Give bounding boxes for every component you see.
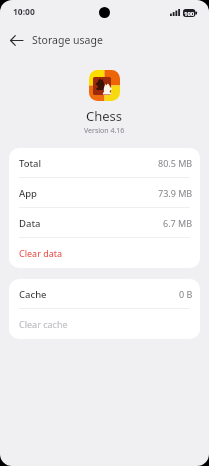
staticText: Clear cache bbox=[19, 318, 68, 330]
button[interactable]: App bbox=[9, 178, 200, 208]
staticText: 0 B bbox=[179, 288, 193, 300]
staticText: 73.9 MB bbox=[158, 187, 193, 199]
button[interactable]: Clear data bbox=[9, 238, 200, 268]
button[interactable]: Back bbox=[7, 31, 25, 49]
staticText: Clear data bbox=[19, 247, 63, 259]
staticText: 10:00 bbox=[13, 6, 35, 18]
staticText: Storage usage bbox=[32, 33, 103, 47]
staticText: 6.7 MB bbox=[163, 217, 193, 229]
staticText: Data bbox=[19, 217, 41, 230]
staticText: Cache bbox=[19, 288, 47, 301]
staticText: Total bbox=[19, 157, 42, 170]
button[interactable]: Total bbox=[9, 148, 200, 178]
staticText: 80.5 MB bbox=[158, 157, 193, 169]
staticText: Version 4.16 bbox=[84, 126, 125, 136]
button[interactable]: Data bbox=[9, 208, 200, 238]
staticText: 100 bbox=[184, 10, 195, 18]
button[interactable]: Cache bbox=[9, 279, 200, 309]
staticText: Chess bbox=[86, 107, 123, 125]
staticText: App bbox=[19, 187, 38, 200]
button[interactable]: Clear cache bbox=[9, 309, 200, 339]
